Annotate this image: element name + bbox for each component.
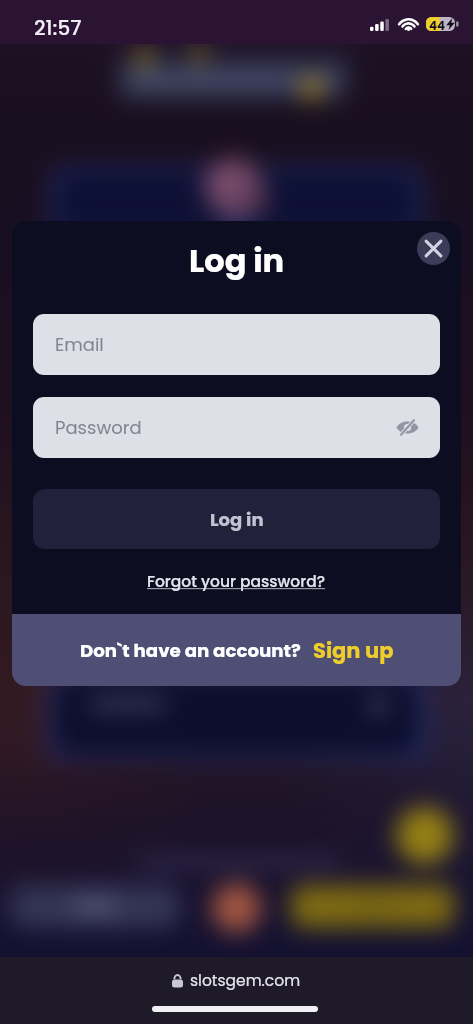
button[interactable]: Log in <box>33 489 440 549</box>
staticText: Log in <box>189 238 285 283</box>
staticText: Don`t have an account? <box>80 638 301 663</box>
button[interactable]: Forgot your password? <box>147 571 326 593</box>
button[interactable]: Don`t have an account? <box>12 614 461 686</box>
staticText: Email <box>55 332 104 357</box>
staticText: slotsgem.com <box>190 970 301 992</box>
button[interactable]: Close <box>417 232 450 265</box>
staticText: 21:57 <box>34 14 82 42</box>
staticText: Sign up <box>313 636 394 665</box>
staticText: Log in <box>210 507 264 532</box>
button[interactable]: Email <box>33 314 440 375</box>
staticText: 44 <box>429 17 446 31</box>
button[interactable]: Show password <box>396 419 419 436</box>
staticText: Password <box>55 415 142 440</box>
button[interactable]: Password <box>33 397 440 458</box>
